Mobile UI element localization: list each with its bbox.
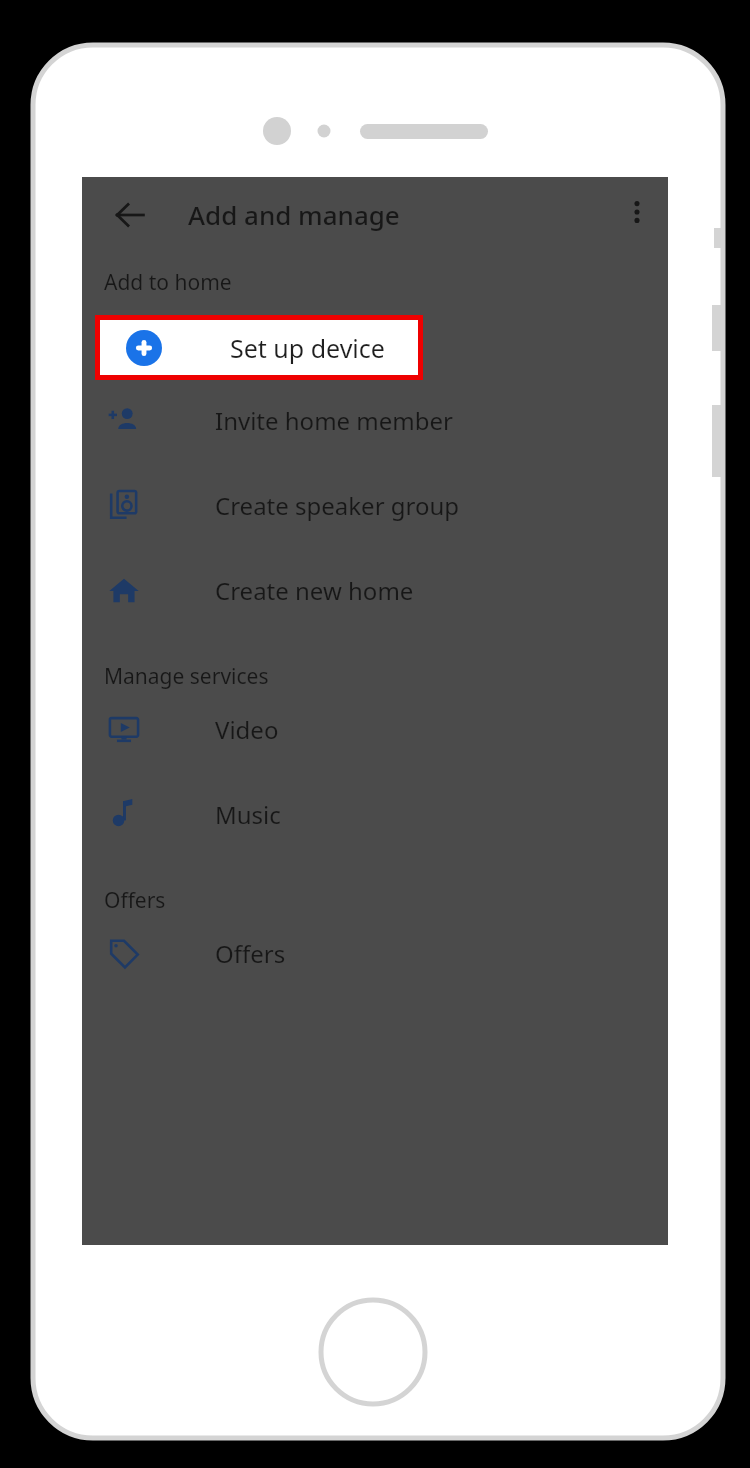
staticText: Video	[215, 713, 279, 746]
button[interactable]: Create speaker group	[82, 474, 668, 536]
staticText: Create new home	[215, 574, 414, 607]
button[interactable]: Invite home member	[82, 389, 668, 451]
staticText: Invite home member	[215, 404, 453, 437]
staticText: Set up device	[230, 331, 385, 365]
button[interactable]: Back	[102, 187, 158, 243]
staticText: Offers	[215, 937, 286, 970]
button[interactable]: Set up device	[95, 315, 423, 380]
button[interactable]: Create new home	[82, 559, 668, 621]
staticText: Add and manage	[188, 197, 400, 232]
button[interactable]: Video	[82, 698, 668, 760]
staticText: Create speaker group	[215, 489, 460, 522]
staticText: Add to home	[104, 268, 232, 297]
staticText: Offers	[104, 886, 166, 915]
button[interactable]: Offers	[82, 922, 668, 984]
button[interactable]: More options	[612, 187, 662, 237]
staticText: Music	[215, 798, 281, 831]
button[interactable]: Music	[82, 783, 668, 845]
staticText: Manage services	[104, 662, 269, 691]
